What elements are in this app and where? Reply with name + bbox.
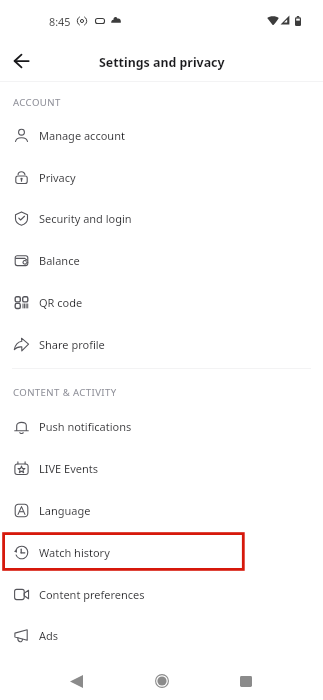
button[interactable]: Recent apps: [224, 659, 268, 700]
button[interactable]: QR code: [0, 281, 323, 323]
button[interactable]: Privacy: [0, 156, 323, 198]
staticText: QR code: [39, 295, 83, 310]
staticText: 8:45: [49, 14, 71, 29]
button[interactable]: Content preferences: [0, 573, 323, 615]
button[interactable]: Share profile: [0, 323, 323, 365]
staticText: Push notifications: [39, 419, 132, 434]
button[interactable]: Language: [0, 489, 323, 531]
button[interactable]: Watch history: [0, 531, 323, 573]
button[interactable]: Ads: [0, 614, 323, 656]
button[interactable]: Back: [5, 45, 37, 77]
staticText: Manage account: [39, 128, 125, 143]
staticText: Watch history: [39, 545, 110, 560]
staticText: Ads: [39, 628, 59, 643]
button[interactable]: Home: [140, 659, 184, 700]
button[interactable]: LIVE Events: [0, 447, 323, 489]
staticText: CONTENT & ACTIVITY: [13, 386, 117, 399]
staticText: Settings and privacy: [99, 54, 225, 71]
staticText: ACCOUNT: [13, 96, 61, 109]
staticText: Content preferences: [39, 587, 145, 602]
staticText: Language: [39, 503, 91, 518]
staticText: LIVE Events: [39, 461, 99, 476]
staticText: Security and login: [39, 211, 132, 226]
button[interactable]: Back: [54, 659, 98, 700]
staticText: Privacy: [39, 170, 76, 185]
button[interactable]: Balance: [0, 239, 323, 281]
button[interactable]: Manage account: [0, 114, 323, 156]
button[interactable]: Security and login: [0, 197, 323, 239]
staticText: Balance: [39, 253, 80, 268]
staticText: Share profile: [39, 337, 105, 352]
button[interactable]: Push notifications: [0, 405, 323, 447]
